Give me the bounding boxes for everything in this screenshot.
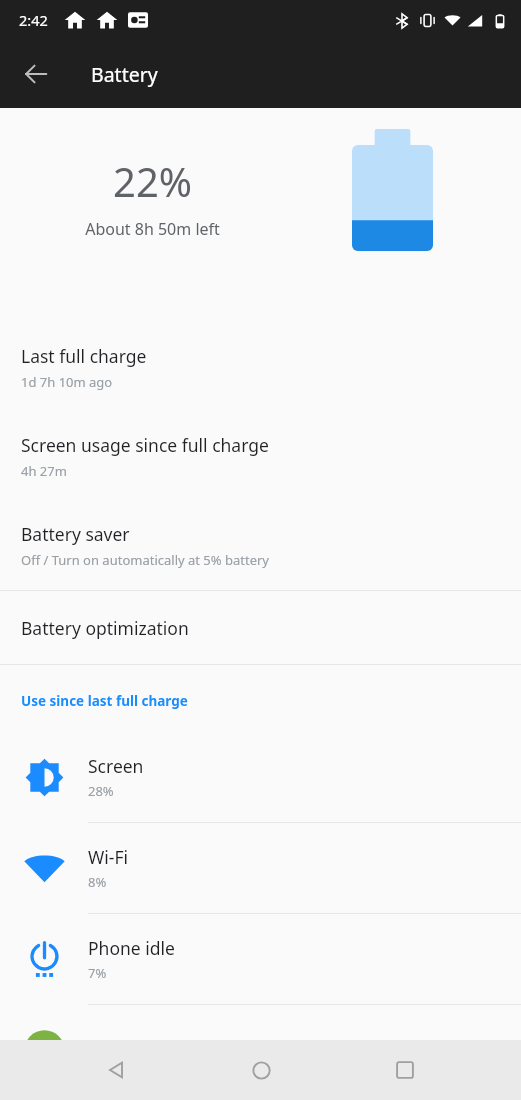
staticText: 2:42 [19, 10, 48, 30]
button[interactable]: Screen usage since full charge [0, 412, 521, 501]
button[interactable]: Phone idle [0, 914, 521, 1004]
button[interactable]: Last full charge [0, 323, 521, 412]
button[interactable]: Battery saver [0, 501, 521, 590]
button[interactable]: Back [88, 1042, 144, 1098]
staticText: Android System [88, 1039, 218, 1063]
staticText: Screen [88, 754, 144, 778]
staticText: About 8h 50m left [85, 218, 220, 240]
staticText: 22% [113, 154, 192, 208]
button[interactable]: Back [12, 50, 60, 98]
staticText: 1d 7h 10m ago [21, 373, 113, 391]
button[interactable]: Battery optimization [0, 591, 521, 664]
staticText: Battery optimization [21, 616, 189, 640]
staticText: Battery saver [21, 522, 130, 546]
staticText: 8% [88, 873, 107, 891]
button[interactable]: Wi-Fi [0, 823, 521, 913]
staticText: Use since last full charge [21, 692, 188, 710]
button[interactable]: Home [233, 1042, 289, 1098]
staticText: 28% [88, 782, 114, 800]
staticText: Phone idle [88, 936, 175, 960]
staticText: 7% [88, 964, 107, 982]
staticText: Last full charge [21, 344, 147, 368]
staticText: Wi-Fi [88, 845, 129, 869]
staticText: Screen usage since full charge [21, 433, 269, 457]
button[interactable]: Screen [0, 732, 521, 822]
staticText: Off / Turn on automatically at 5% batter… [21, 551, 269, 569]
staticText: 4h 27m [21, 462, 67, 480]
staticText: Battery [91, 61, 158, 88]
button[interactable]: Android System [0, 1005, 521, 1095]
button[interactable]: Recent apps [377, 1042, 433, 1098]
